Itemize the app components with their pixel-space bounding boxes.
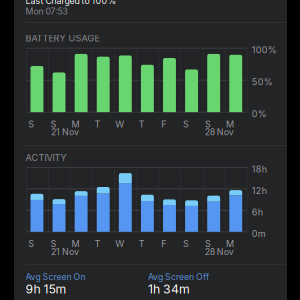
staticText: S (205, 238, 211, 249)
button[interactable]: Avg Screen Off (148, 267, 270, 300)
staticText: S (183, 238, 189, 249)
staticText: W (115, 119, 124, 130)
staticText: Avg Screen Off (148, 271, 209, 282)
staticText: BATTERY USAGE (25, 33, 99, 44)
staticText: T (139, 238, 145, 249)
staticText: S (50, 238, 56, 249)
staticText: 21 Nov (51, 127, 79, 137)
staticText: S (50, 119, 56, 130)
staticText: W (115, 238, 124, 249)
staticText: M (226, 238, 234, 249)
staticText: Avg Screen On (25, 271, 85, 282)
staticText: 18h (252, 164, 267, 175)
button[interactable]: Last Charged to 100% (14, 0, 287, 22)
staticText: F (161, 119, 166, 130)
staticText: T (139, 119, 145, 130)
staticText: Mon 07:53 (25, 6, 67, 17)
staticText: 0% (252, 108, 267, 119)
staticText: 50% (252, 76, 273, 87)
staticText: T (95, 238, 101, 249)
staticText: 9h 15m (25, 281, 66, 296)
staticText: 6h (252, 207, 263, 218)
staticText: ACTIVITY (25, 152, 66, 163)
staticText: S (28, 119, 34, 130)
staticText: 1h 34m (148, 281, 190, 296)
staticText: 21 Nov (51, 246, 79, 257)
staticText: F (161, 238, 166, 249)
staticText: M (71, 119, 79, 130)
staticText: S (183, 119, 189, 130)
staticText: 12h (252, 185, 267, 196)
staticText: 100% (252, 44, 277, 55)
staticText: M (226, 119, 234, 130)
staticText: 0m (252, 228, 266, 239)
button[interactable]: Avg Screen On (25, 267, 147, 300)
staticText: S (28, 238, 34, 249)
staticText: 28 Nov (205, 127, 234, 137)
staticText: S (205, 119, 211, 130)
staticText: T (95, 119, 101, 130)
staticText: M (71, 238, 79, 249)
staticText: Last Charged to 100% (25, 0, 116, 6)
staticText: 28 Nov (205, 246, 234, 257)
